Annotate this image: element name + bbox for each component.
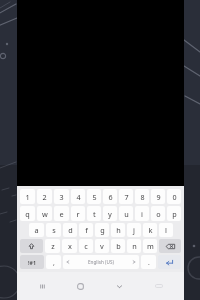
button[interactable]: Home	[61, 272, 100, 300]
staticText: h	[116, 225, 121, 235]
staticText: o	[156, 209, 161, 219]
button[interactable]: Recents	[23, 272, 61, 300]
button[interactable]: h	[111, 223, 125, 237]
button[interactable]: f	[79, 223, 93, 237]
staticText: z	[51, 241, 55, 251]
button[interactable]: s	[46, 223, 61, 237]
button[interactable]: k	[143, 223, 157, 237]
button[interactable]: m	[143, 239, 157, 253]
button[interactable]: a	[29, 223, 44, 237]
button[interactable]: c	[79, 239, 93, 253]
button[interactable]: ,	[46, 255, 61, 269]
staticText: e	[59, 209, 64, 219]
staticText: n	[132, 241, 137, 251]
staticText: 7	[124, 192, 129, 202]
button[interactable]: English (US)	[63, 255, 139, 269]
staticText: t	[93, 209, 96, 219]
button[interactable]: y	[103, 206, 117, 221]
button[interactable]: g	[95, 223, 109, 237]
staticText: i	[141, 209, 143, 219]
staticText: k	[148, 225, 153, 235]
button[interactable]: j	[127, 223, 141, 237]
staticText: b	[116, 241, 121, 251]
button[interactable]: Hide keyboard	[100, 272, 139, 300]
staticText: v	[100, 241, 104, 251]
button[interactable]: 0	[167, 189, 181, 204]
staticText: c	[84, 241, 88, 251]
button[interactable]: 5	[87, 189, 101, 204]
button[interactable]: 8	[135, 189, 149, 204]
button[interactable]: w	[37, 206, 52, 221]
staticText: ,	[53, 258, 55, 267]
staticText: s	[52, 225, 56, 235]
button[interactable]: e	[54, 206, 69, 221]
staticText: m	[147, 241, 154, 251]
staticText: d	[68, 225, 73, 235]
button[interactable]: p	[167, 206, 181, 221]
staticText: q	[25, 209, 30, 219]
button[interactable]: r	[71, 206, 85, 221]
button[interactable]: Backspace	[159, 239, 181, 253]
button[interactable]: v	[95, 239, 109, 253]
button[interactable]: z	[45, 239, 60, 253]
button[interactable]: 1	[20, 189, 35, 204]
staticText: 2	[42, 192, 47, 202]
button[interactable]: 9	[151, 189, 165, 204]
staticText: 4	[76, 192, 81, 202]
button[interactable]: 3	[54, 189, 69, 204]
button[interactable]: !#1	[20, 255, 44, 269]
button[interactable]: o	[151, 206, 165, 221]
staticText: a	[34, 225, 39, 235]
staticText: 6	[108, 192, 113, 202]
staticText: !#1	[28, 259, 36, 266]
staticText: 9	[156, 192, 161, 202]
button[interactable]: 7	[119, 189, 133, 204]
staticText: g	[100, 225, 105, 235]
staticText: f	[85, 225, 88, 235]
button[interactable]: Shift	[20, 239, 43, 253]
staticText: u	[124, 209, 129, 219]
button[interactable]: x	[62, 239, 77, 253]
button[interactable]: n	[127, 239, 141, 253]
button[interactable]: .	[141, 255, 156, 269]
staticText: 3	[59, 192, 64, 202]
button[interactable]: Enter	[158, 255, 181, 269]
button[interactable]: l	[159, 223, 173, 237]
staticText: 0	[172, 192, 177, 202]
staticText: y	[108, 209, 112, 219]
button[interactable]: i	[135, 206, 149, 221]
button[interactable]: u	[119, 206, 133, 221]
staticText: .	[148, 258, 150, 267]
button[interactable]: t	[87, 206, 101, 221]
button[interactable]: q	[20, 206, 35, 221]
staticText: w	[42, 209, 48, 219]
staticText: l	[165, 225, 167, 235]
staticText: x	[68, 241, 72, 251]
staticText: English (US)	[88, 259, 114, 265]
button[interactable]: 4	[71, 189, 85, 204]
staticText: r	[76, 209, 80, 219]
staticText: p	[172, 209, 177, 219]
staticText: 1	[25, 192, 30, 202]
button[interactable]: 2	[37, 189, 52, 204]
button[interactable]: 6	[103, 189, 117, 204]
staticText: 5	[92, 192, 97, 202]
button[interactable]: b	[111, 239, 125, 253]
button[interactable]: d	[63, 223, 77, 237]
staticText: 8	[140, 192, 145, 202]
staticText: j	[133, 225, 135, 235]
